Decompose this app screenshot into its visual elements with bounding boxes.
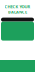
staticText: CHECK YOUR <box>4 4 30 9</box>
staticText: BALANCE <box>8 9 27 15</box>
